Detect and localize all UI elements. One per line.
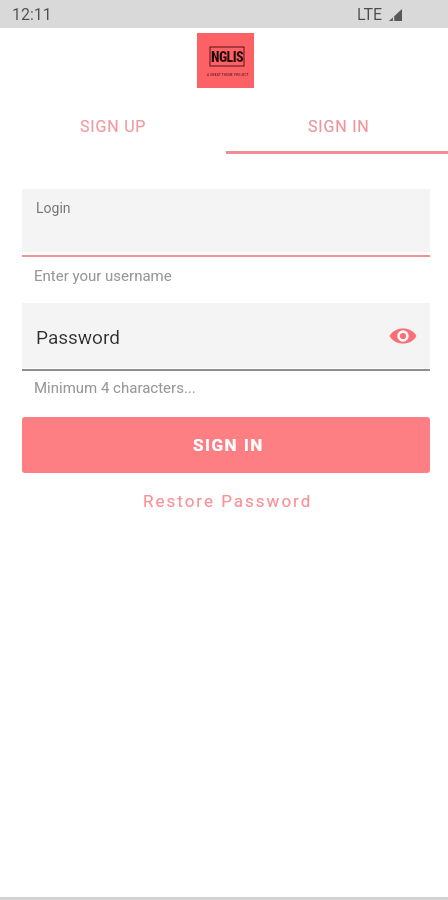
staticText: A GREAT THEME PROJECT [207,73,249,77]
staticText: Password [36,326,120,348]
staticText: 12:11 [12,5,52,24]
staticText: SIGN UP [80,117,147,136]
button[interactable]: SIGN IN [226,106,448,146]
staticText: NGLIS [211,49,244,65]
staticText: SIGN IN [308,117,370,136]
staticText: Login [36,200,71,216]
staticText: SIGN IN [193,435,264,455]
button[interactable]: Restore Password [133,486,323,516]
staticText: Restore Password [143,491,313,511]
staticText: Minimum 4 characters... [34,379,196,397]
staticText: LTE [357,5,383,24]
staticText: Enter your username [34,267,172,285]
button[interactable]: SIGN UP [0,106,226,146]
button[interactable]: Login [22,189,430,252]
button[interactable]: Password [22,303,430,368]
button[interactable]: Show password [385,318,421,354]
button[interactable]: SIGN IN [22,417,430,473]
